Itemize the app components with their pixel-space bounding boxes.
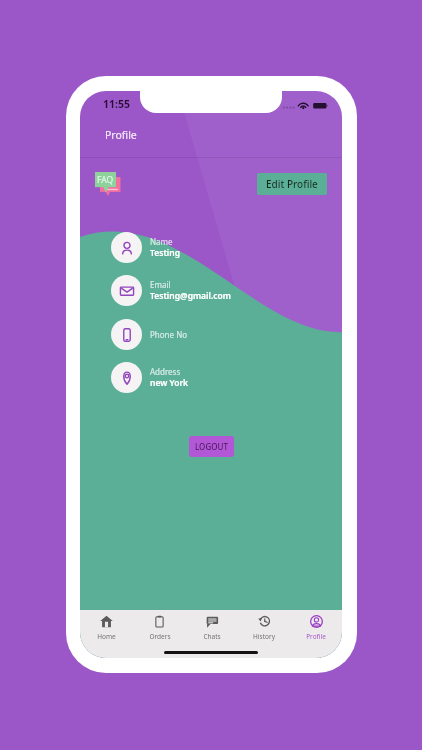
button[interactable]: Profile <box>290 610 342 658</box>
staticText: Orders <box>149 632 171 641</box>
staticText: Home <box>97 632 116 641</box>
staticText: Name <box>150 236 173 247</box>
staticText: 11:55 <box>103 97 130 111</box>
staticText: Testing@gmail.com <box>150 290 231 302</box>
staticText: Profile <box>105 128 137 142</box>
staticText: new York <box>150 377 189 389</box>
staticText: LOGOUT <box>195 441 228 452</box>
staticText: History <box>253 632 275 641</box>
staticText: Email <box>150 279 171 290</box>
staticText: Edit Profile <box>266 177 318 191</box>
button[interactable]: LOGOUT <box>189 436 234 457</box>
button[interactable]: Chats <box>186 610 238 658</box>
button[interactable]: Address <box>80 362 342 393</box>
button[interactable]: Phone No <box>80 319 342 350</box>
staticText: Chats <box>203 632 221 641</box>
button[interactable]: Name <box>80 232 342 263</box>
button[interactable]: FAQ <box>95 172 121 196</box>
staticText: Phone No <box>150 329 188 340</box>
button[interactable]: History <box>238 610 290 658</box>
staticText: Testing <box>150 247 181 259</box>
staticText: Address <box>150 366 181 377</box>
button[interactable]: Orders <box>133 610 186 658</box>
button[interactable]: Email <box>80 275 342 306</box>
staticText: Profile <box>306 632 326 641</box>
button[interactable]: Home <box>80 610 133 658</box>
button[interactable]: Edit Profile <box>257 173 327 195</box>
staticText: FAQ <box>97 174 114 186</box>
